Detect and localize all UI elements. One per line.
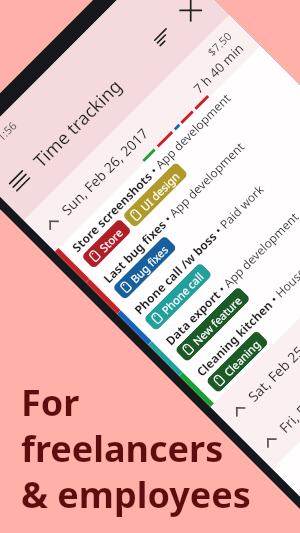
button[interactable]: Sun, Feb 26, 2017 [24, 15, 261, 251]
staticText: New feature [189, 292, 245, 348]
button[interactable]: Data export • App development [148, 139, 300, 376]
button[interactable]: Cleaning kitchen • Housework [179, 170, 300, 407]
staticText: Fri, Feb 24, 2017 [275, 348, 300, 437]
button[interactable]: Menu [0, 157, 44, 205]
staticText: Store screenshots • App development [68, 90, 234, 255]
button[interactable]: Sat, Feb 25, 2017 [210, 201, 300, 438]
staticText: Store [96, 225, 126, 255]
staticText: 1:56 [0, 118, 20, 144]
staticText: $7.50 [204, 28, 235, 59]
staticText: Cleaning kitchen • Housework [193, 244, 300, 379]
staticText: Sat, Feb 25, 2017 [244, 314, 300, 406]
button[interactable]: Filter [136, 10, 190, 64]
staticText: Time tracking [28, 42, 159, 173]
staticText: Phone call /w boss • Paid work [131, 181, 267, 317]
button[interactable]: Last bug fixes • App development [86, 77, 300, 314]
button[interactable]: Store screenshots • App development [55, 46, 292, 283]
staticText: Phone call [158, 268, 207, 317]
button[interactable]: Close [163, 0, 217, 37]
staticText: Cleaning [220, 336, 263, 379]
button[interactable]: Phone call /w boss • Paid work [117, 108, 300, 345]
staticText: For freelancers & employees [21, 378, 251, 519]
button[interactable]: Fri, Feb 24, 2017 [242, 232, 300, 469]
staticText: Bug fixes [127, 242, 172, 286]
staticText: Data export • App development [162, 208, 300, 348]
staticText: Last bug fixes • App development [99, 138, 247, 286]
staticText: 7 h 40 min [189, 39, 248, 97]
staticText: UI design [137, 168, 183, 214]
staticText: Sun, Feb 26, 2017 [57, 123, 153, 219]
